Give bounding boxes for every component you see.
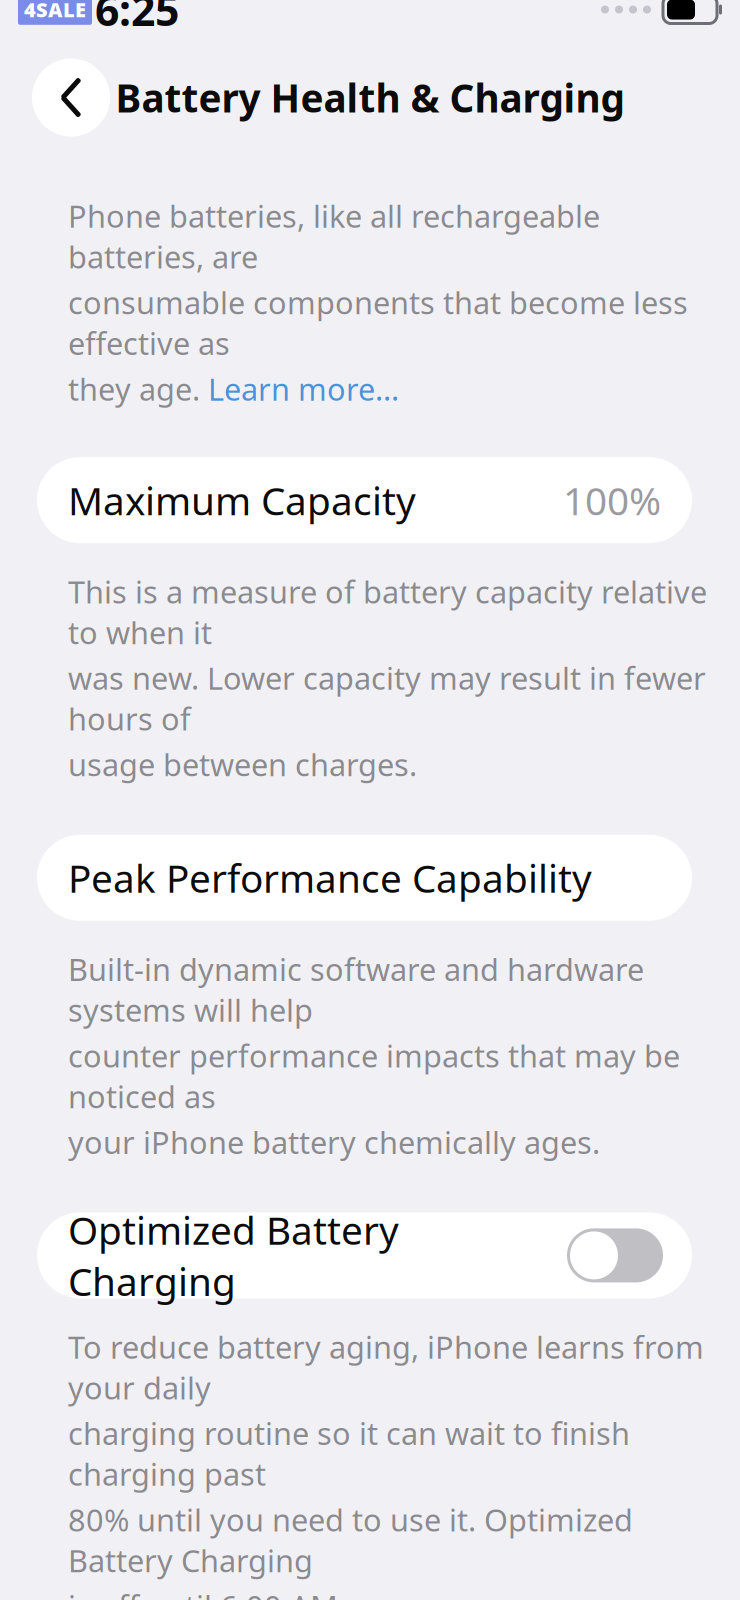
staticText: Maximum Capacity [68,474,416,526]
staticText: Phone batteries, like all rechargeable b… [68,195,600,277]
staticText: 100% [563,474,661,526]
staticText: This is a measure of battery capacity re… [68,571,707,653]
staticText: is off until 6:00 AM. [68,1586,346,1600]
button[interactable]: Back [32,58,110,136]
staticText: counter performance impacts that may be … [68,1035,680,1117]
staticText: Optimized Battery Charging [68,1204,399,1307]
button[interactable]: Maximum Capacity [37,457,692,543]
button[interactable]: Optimized Battery Charging [37,1212,692,1298]
button[interactable]: Peak Performance Capability [37,835,692,921]
staticText: they age. [68,368,208,409]
staticText: usage between charges. [68,744,417,785]
staticText: To reduce battery aging, iPhone learns f… [68,1326,704,1408]
staticText: consumable components that become less e… [68,282,688,363]
staticText: charging routine so it can wait to finis… [68,1413,630,1494]
staticText: 80% until you need to use it. Optimized … [68,1499,633,1581]
staticText: Learn more... [208,368,399,409]
staticText: Battery Health & Charging [115,72,624,123]
staticText: Peak Performance Capability [68,852,592,903]
staticText: 4SALE [24,0,86,23]
staticText: 6:25 [95,0,179,38]
button[interactable]: Learn more... [208,368,399,409]
staticText: your iPhone battery chemically ages. [68,1122,600,1162]
staticText: was new. Lower capacity may result in fe… [68,658,706,739]
staticText: Built-in dynamic software and hardware s… [68,949,644,1030]
